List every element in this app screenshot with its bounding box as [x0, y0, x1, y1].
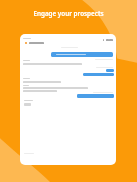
button[interactable] [20, 34, 116, 165]
staticText: Engage your prospects [0, 9, 137, 18]
